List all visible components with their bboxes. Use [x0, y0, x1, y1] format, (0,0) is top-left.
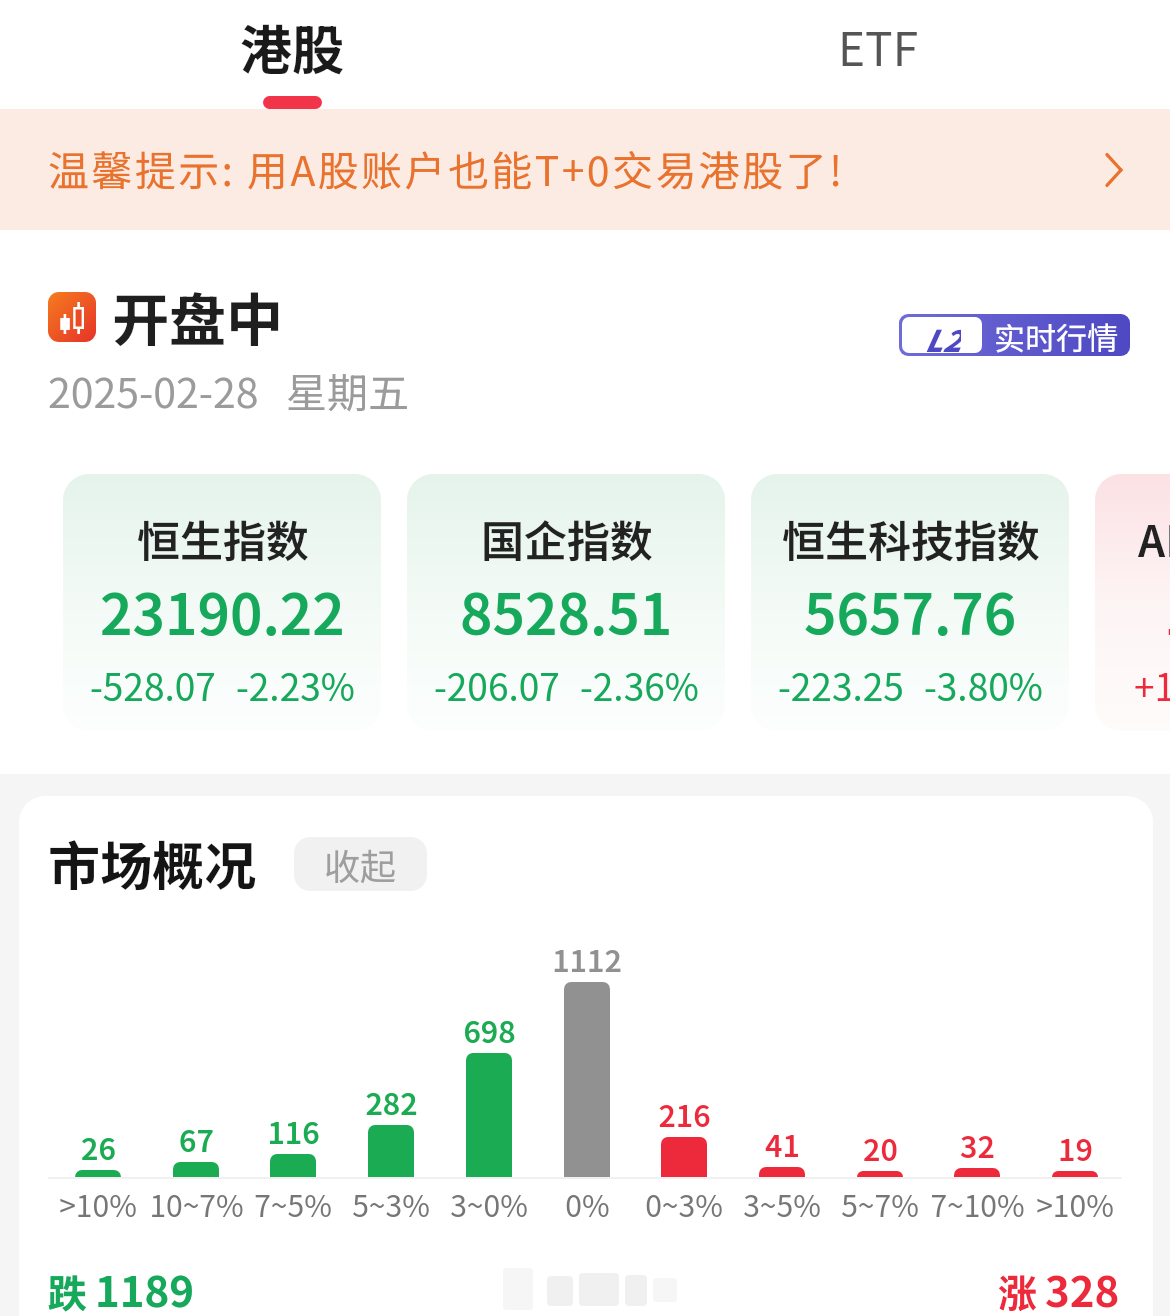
staticText: 5~7% [841, 1182, 919, 1225]
staticText: 3~0% [450, 1182, 528, 1225]
staticText: -528.07 [90, 658, 216, 712]
button[interactable]: 收起 [294, 837, 427, 891]
staticText: 0% [565, 1182, 610, 1225]
staticText: 市场概况 [48, 825, 257, 900]
staticText: 国企指数 [481, 507, 653, 569]
button[interactable]: ETF [808, 0, 948, 109]
staticText: 216 [658, 1092, 711, 1135]
staticText: 142.88 [1164, 570, 1170, 651]
staticText: 跌 [48, 1263, 88, 1316]
staticText: 5657.76 [804, 570, 1017, 651]
staticText: -2.36% [580, 658, 699, 712]
staticText: 10~7% [149, 1182, 244, 1225]
staticText: 328 [1045, 1258, 1120, 1316]
button[interactable]: 开盘中 [48, 275, 283, 358]
button[interactable]: 温馨提示: 用A股账户也能T+0交易港股了! [0, 109, 1170, 230]
staticText: -206.07 [434, 658, 560, 712]
button[interactable]: L2 [899, 314, 1130, 356]
staticText: 8528.51 [460, 570, 673, 651]
staticText: 19 [1058, 1126, 1093, 1169]
staticText: 7~5% [254, 1182, 332, 1225]
staticText: 116 [267, 1109, 320, 1152]
staticText: 282 [365, 1080, 418, 1123]
staticText: 32 [960, 1123, 995, 1166]
staticText: AH股溢价指 [1138, 507, 1170, 569]
staticText: 恒生指数 [137, 507, 309, 569]
button[interactable]: 港股 [222, 0, 362, 109]
button[interactable]: 国企指数 [407, 474, 725, 731]
staticText: 7~10% [930, 1182, 1025, 1225]
staticText: 港股 [240, 9, 345, 84]
staticText: +1.62 [1134, 658, 1170, 712]
button[interactable]: 恒生指数 [63, 474, 381, 731]
staticText: 温馨提示: 用A股账户也能T+0交易港股了! [48, 138, 845, 197]
staticText: 698 [463, 1008, 516, 1051]
staticText: L2 [924, 317, 961, 353]
staticText: -2.23% [236, 658, 355, 712]
other: More [1092, 148, 1136, 192]
staticText: -223.25 [778, 658, 904, 712]
staticText: 26 [81, 1125, 116, 1168]
staticText: 20 [863, 1126, 898, 1169]
staticText: 恒生科技指数 [782, 507, 1040, 569]
button[interactable]: 恒生科技指数 [751, 474, 1069, 731]
staticText: 1189 [95, 1258, 195, 1316]
staticText: 开盘中 [112, 275, 283, 358]
staticText: >10% [59, 1182, 137, 1225]
staticText: >10% [1036, 1182, 1114, 1225]
staticText: 41 [765, 1122, 800, 1165]
staticText: 0~3% [645, 1182, 723, 1225]
staticText: ETF [838, 13, 919, 80]
staticText: 5~3% [352, 1182, 430, 1225]
button[interactable]: AH股溢价指 [1095, 474, 1170, 731]
staticText: 3~5% [743, 1182, 821, 1225]
staticText: -3.80% [924, 658, 1043, 712]
staticText: 23190.22 [100, 570, 345, 651]
staticText: 2025-02-28 星期五 [48, 360, 410, 419]
staticText: 收起 [324, 838, 397, 890]
staticText: 67 [179, 1117, 214, 1160]
staticText: 实时行情 [994, 314, 1118, 356]
staticText: 1112 [552, 937, 622, 980]
staticText: 涨 [998, 1263, 1038, 1316]
